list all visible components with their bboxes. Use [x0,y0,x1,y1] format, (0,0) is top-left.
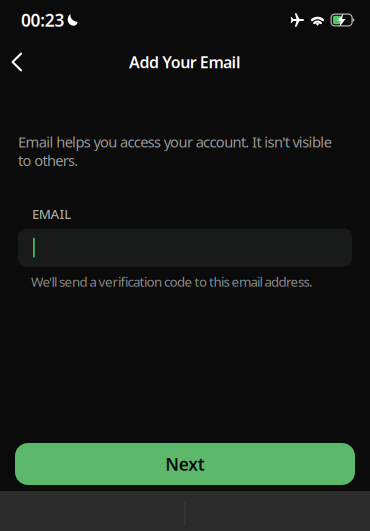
button[interactable]: Next [0,443,370,485]
staticText: Add Your Email [129,51,241,73]
button[interactable]: Back [2,43,32,80]
staticText: EMAIL [32,205,71,223]
staticText: Email helps you access your account. It … [18,132,332,170]
staticText: We'll send a verification code to this e… [31,273,313,290]
staticText: Next [165,452,205,475]
staticText: 00:23 [21,8,64,31]
